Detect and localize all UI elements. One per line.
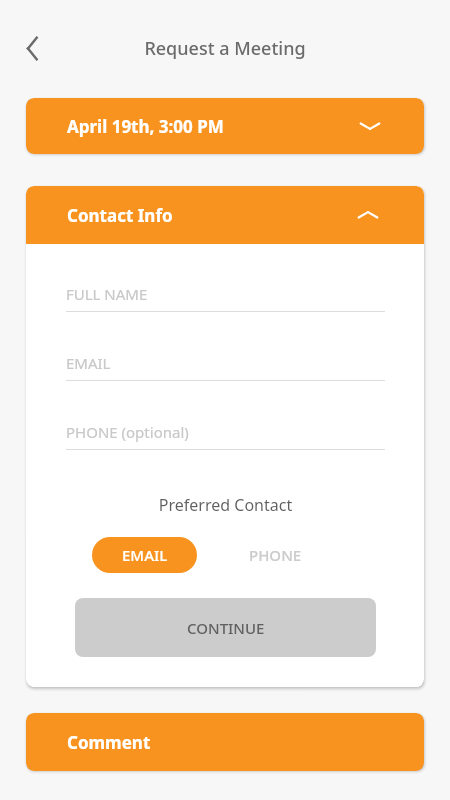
button[interactable]: April 19th, 3:00 PM: [26, 98, 424, 154]
button[interactable]: PHONE: [223, 537, 328, 573]
staticText: EMAIL: [66, 353, 111, 373]
staticText: Comment: [67, 731, 151, 754]
staticText: Preferred Contact: [66, 494, 385, 516]
staticText: FULL NAME: [66, 284, 148, 304]
button[interactable]: CONTINUE: [75, 598, 376, 657]
staticText: April 19th, 3:00 PM: [67, 115, 224, 138]
button[interactable]: Contact Info: [26, 186, 424, 244]
staticText: Request a Meeting: [144, 36, 306, 61]
staticText: PHONE: [249, 545, 302, 565]
staticText: PHONE (optional): [66, 422, 189, 442]
button[interactable]: Back: [16, 32, 48, 64]
button[interactable]: Comment: [26, 713, 424, 771]
staticText: Contact Info: [67, 204, 173, 227]
staticText: CONTINUE: [187, 618, 265, 638]
button[interactable]: EMAIL: [92, 537, 197, 573]
staticText: EMAIL: [122, 545, 168, 565]
